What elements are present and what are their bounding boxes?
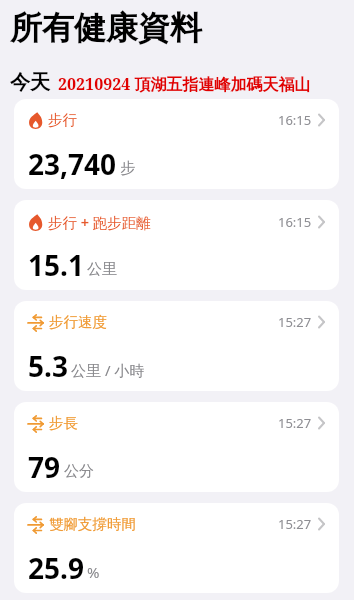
staticText: 23,740 [28, 145, 117, 183]
button[interactable]: 步行 [14, 99, 339, 189]
button[interactable]: 步行 + 跑步距離 [14, 200, 339, 290]
staticText: 79 [28, 448, 61, 486]
staticText: 今天 [10, 70, 50, 95]
staticText: 25.9 [28, 549, 84, 587]
staticText: 步行 [48, 111, 77, 129]
staticText: 公分 [64, 462, 94, 481]
button[interactable]: 雙腳支撐時間 [14, 503, 339, 593]
staticText: 15:27 [278, 414, 312, 432]
staticText: 15.1 [28, 246, 84, 284]
staticText: 公里 [87, 260, 117, 279]
staticText: 16:15 [278, 213, 312, 231]
staticText: 15:27 [278, 313, 312, 331]
staticText: % [87, 562, 100, 582]
staticText: 步行 + 跑步距離 [48, 212, 151, 232]
button[interactable]: 步長 [14, 402, 339, 492]
staticText: 步 [120, 159, 135, 178]
staticText: 15:27 [278, 515, 312, 533]
staticText: 所有健康資料 [10, 8, 202, 48]
staticText: 5.3 [28, 347, 68, 385]
staticText: 16:15 [278, 111, 312, 129]
staticText: 雙腳支撐時間 [49, 515, 136, 533]
staticText: 20210924 頂湖五指連峰加碼天福山 [58, 73, 311, 95]
button[interactable]: 步行速度 [14, 301, 339, 391]
staticText: 步行速度 [49, 313, 107, 331]
staticText: 公里 / 小時 [71, 360, 145, 380]
staticText: 步長 [49, 414, 78, 432]
